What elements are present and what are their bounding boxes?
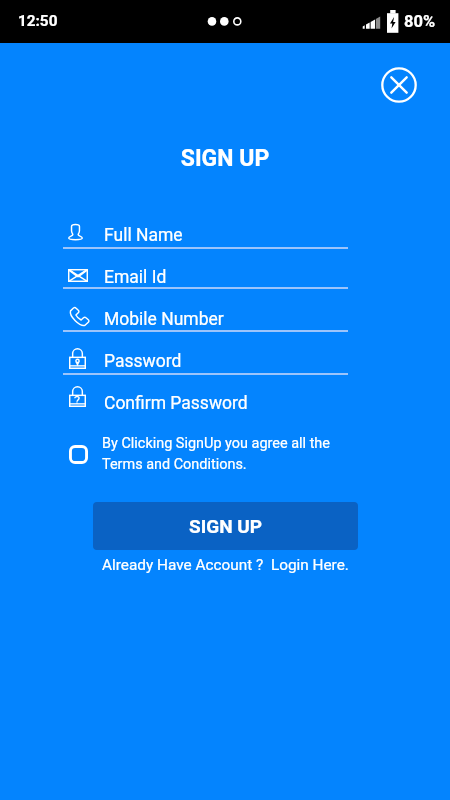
- staticText: Full Name: [104, 225, 183, 246]
- staticText: By Clicking SignUp you agree all the Ter…: [102, 435, 330, 473]
- button[interactable]: Close: [381, 67, 417, 103]
- staticText: SIGN UP: [189, 515, 263, 537]
- staticText: Email Id: [104, 267, 167, 288]
- staticText: Confirm Password: [104, 393, 248, 414]
- staticText: 12:50: [18, 12, 58, 30]
- staticText: SIGN UP: [0, 145, 450, 172]
- button[interactable]: By Clicking SignUp you agree all the Ter…: [67, 432, 352, 476]
- button[interactable]: Already Have Account ? Login Here.: [102, 556, 349, 574]
- button[interactable]: SIGN UP: [93, 502, 358, 550]
- staticText: Mobile Number: [104, 309, 224, 330]
- staticText: Password: [104, 351, 182, 372]
- staticText: 80%: [404, 12, 436, 31]
